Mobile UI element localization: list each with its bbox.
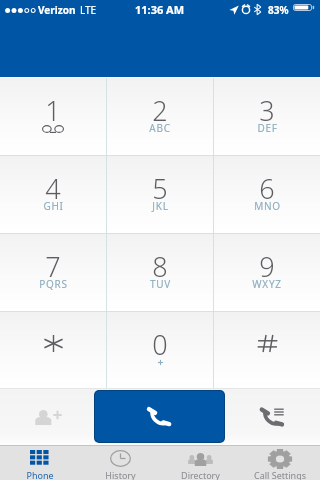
staticText: PQRS bbox=[39, 277, 68, 291]
staticText: LTE bbox=[80, 3, 97, 17]
button[interactable]: 6 bbox=[214, 156, 320, 234]
button[interactable]: 1 bbox=[0, 78, 106, 156]
staticText: 0 bbox=[152, 326, 168, 363]
staticText: GHI bbox=[43, 199, 64, 213]
button[interactable]: 5 bbox=[107, 156, 213, 234]
button[interactable]: 4 bbox=[0, 156, 106, 234]
button[interactable]: Add contact bbox=[0, 390, 94, 442]
staticText: 8 bbox=[152, 248, 168, 285]
button[interactable] bbox=[0, 312, 106, 388]
button[interactable]: 2 bbox=[107, 78, 213, 156]
staticText: 6 bbox=[259, 170, 275, 207]
staticText: TUV bbox=[150, 277, 171, 291]
staticText: 83% bbox=[268, 3, 289, 17]
staticText: Call Settings bbox=[254, 469, 306, 480]
button[interactable]: 9 bbox=[214, 234, 320, 312]
staticText: 3 bbox=[259, 92, 275, 129]
staticText: ABC bbox=[149, 121, 171, 135]
staticText: Phone bbox=[26, 469, 54, 480]
button[interactable]: Call bbox=[94, 390, 225, 443]
button[interactable]: Call Settings bbox=[240, 445, 320, 480]
button[interactable]: Phone bbox=[0, 445, 80, 480]
staticText: 7 bbox=[45, 248, 61, 285]
staticText: 1 bbox=[45, 92, 61, 129]
staticText: History bbox=[105, 469, 136, 480]
staticText: Directory bbox=[181, 469, 220, 480]
button[interactable]: Recent calls bbox=[225, 390, 320, 442]
button[interactable] bbox=[214, 312, 320, 388]
staticText: JKL bbox=[152, 199, 169, 213]
button[interactable]: History bbox=[80, 445, 160, 480]
staticText: 11:36 AM bbox=[135, 2, 185, 17]
button[interactable]: 8 bbox=[107, 234, 213, 312]
button[interactable]: 0 bbox=[107, 312, 213, 388]
staticText: WXYZ bbox=[252, 277, 282, 291]
staticText: 9 bbox=[259, 248, 275, 285]
staticText: 4 bbox=[45, 170, 61, 207]
staticText: Verizon bbox=[38, 3, 76, 17]
button[interactable]: Directory bbox=[160, 445, 240, 480]
button[interactable]: 7 bbox=[0, 234, 106, 312]
staticText: 2 bbox=[152, 92, 168, 129]
button[interactable]: 3 bbox=[214, 78, 320, 156]
staticText: MNO bbox=[254, 199, 281, 213]
staticText: 5 bbox=[152, 170, 168, 207]
staticText: DEF bbox=[257, 121, 278, 135]
